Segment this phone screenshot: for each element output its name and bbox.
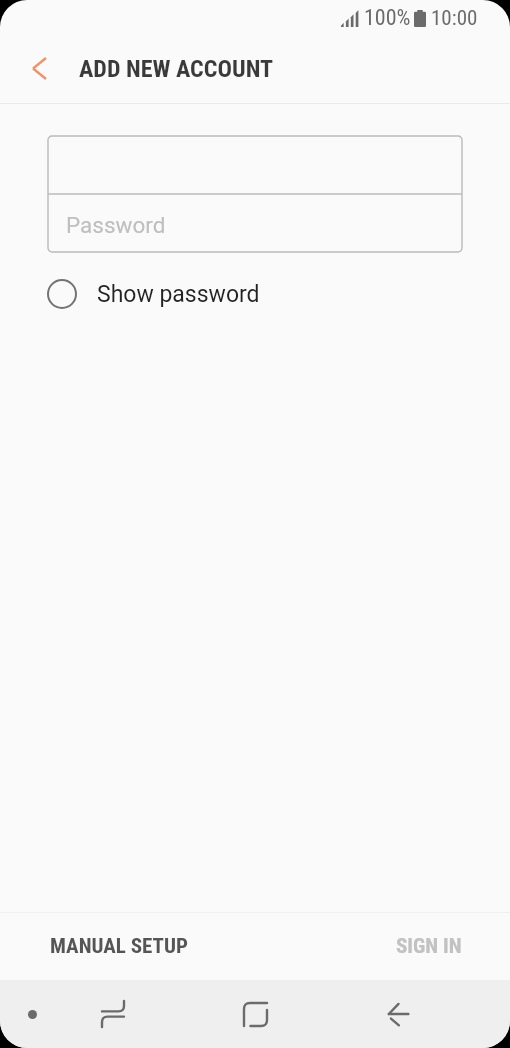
staticText: MANUAL SETUP — [50, 934, 188, 959]
staticText: SIGN IN — [396, 934, 462, 959]
button[interactable]: Navigate up — [0, 40, 78, 103]
button[interactable]: Back — [366, 982, 430, 1046]
staticText: ADD NEW ACCOUNT — [79, 55, 274, 83]
button[interactable]: Show password — [47, 268, 260, 320]
button[interactable]: SIGN IN — [348, 913, 510, 980]
staticText: Password — [66, 212, 166, 238]
button[interactable]: Notifications — [0, 982, 64, 1046]
button[interactable]: Recent apps — [81, 982, 145, 1046]
staticText: 10:00 — [431, 6, 478, 31]
button[interactable]: MANUAL SETUP — [0, 913, 238, 980]
staticText: Show password — [97, 281, 260, 308]
button[interactable]: Home — [223, 982, 287, 1046]
button[interactable] — [48, 136, 462, 194]
button[interactable]: Password — [48, 194, 462, 252]
staticText: 100% — [364, 5, 411, 31]
